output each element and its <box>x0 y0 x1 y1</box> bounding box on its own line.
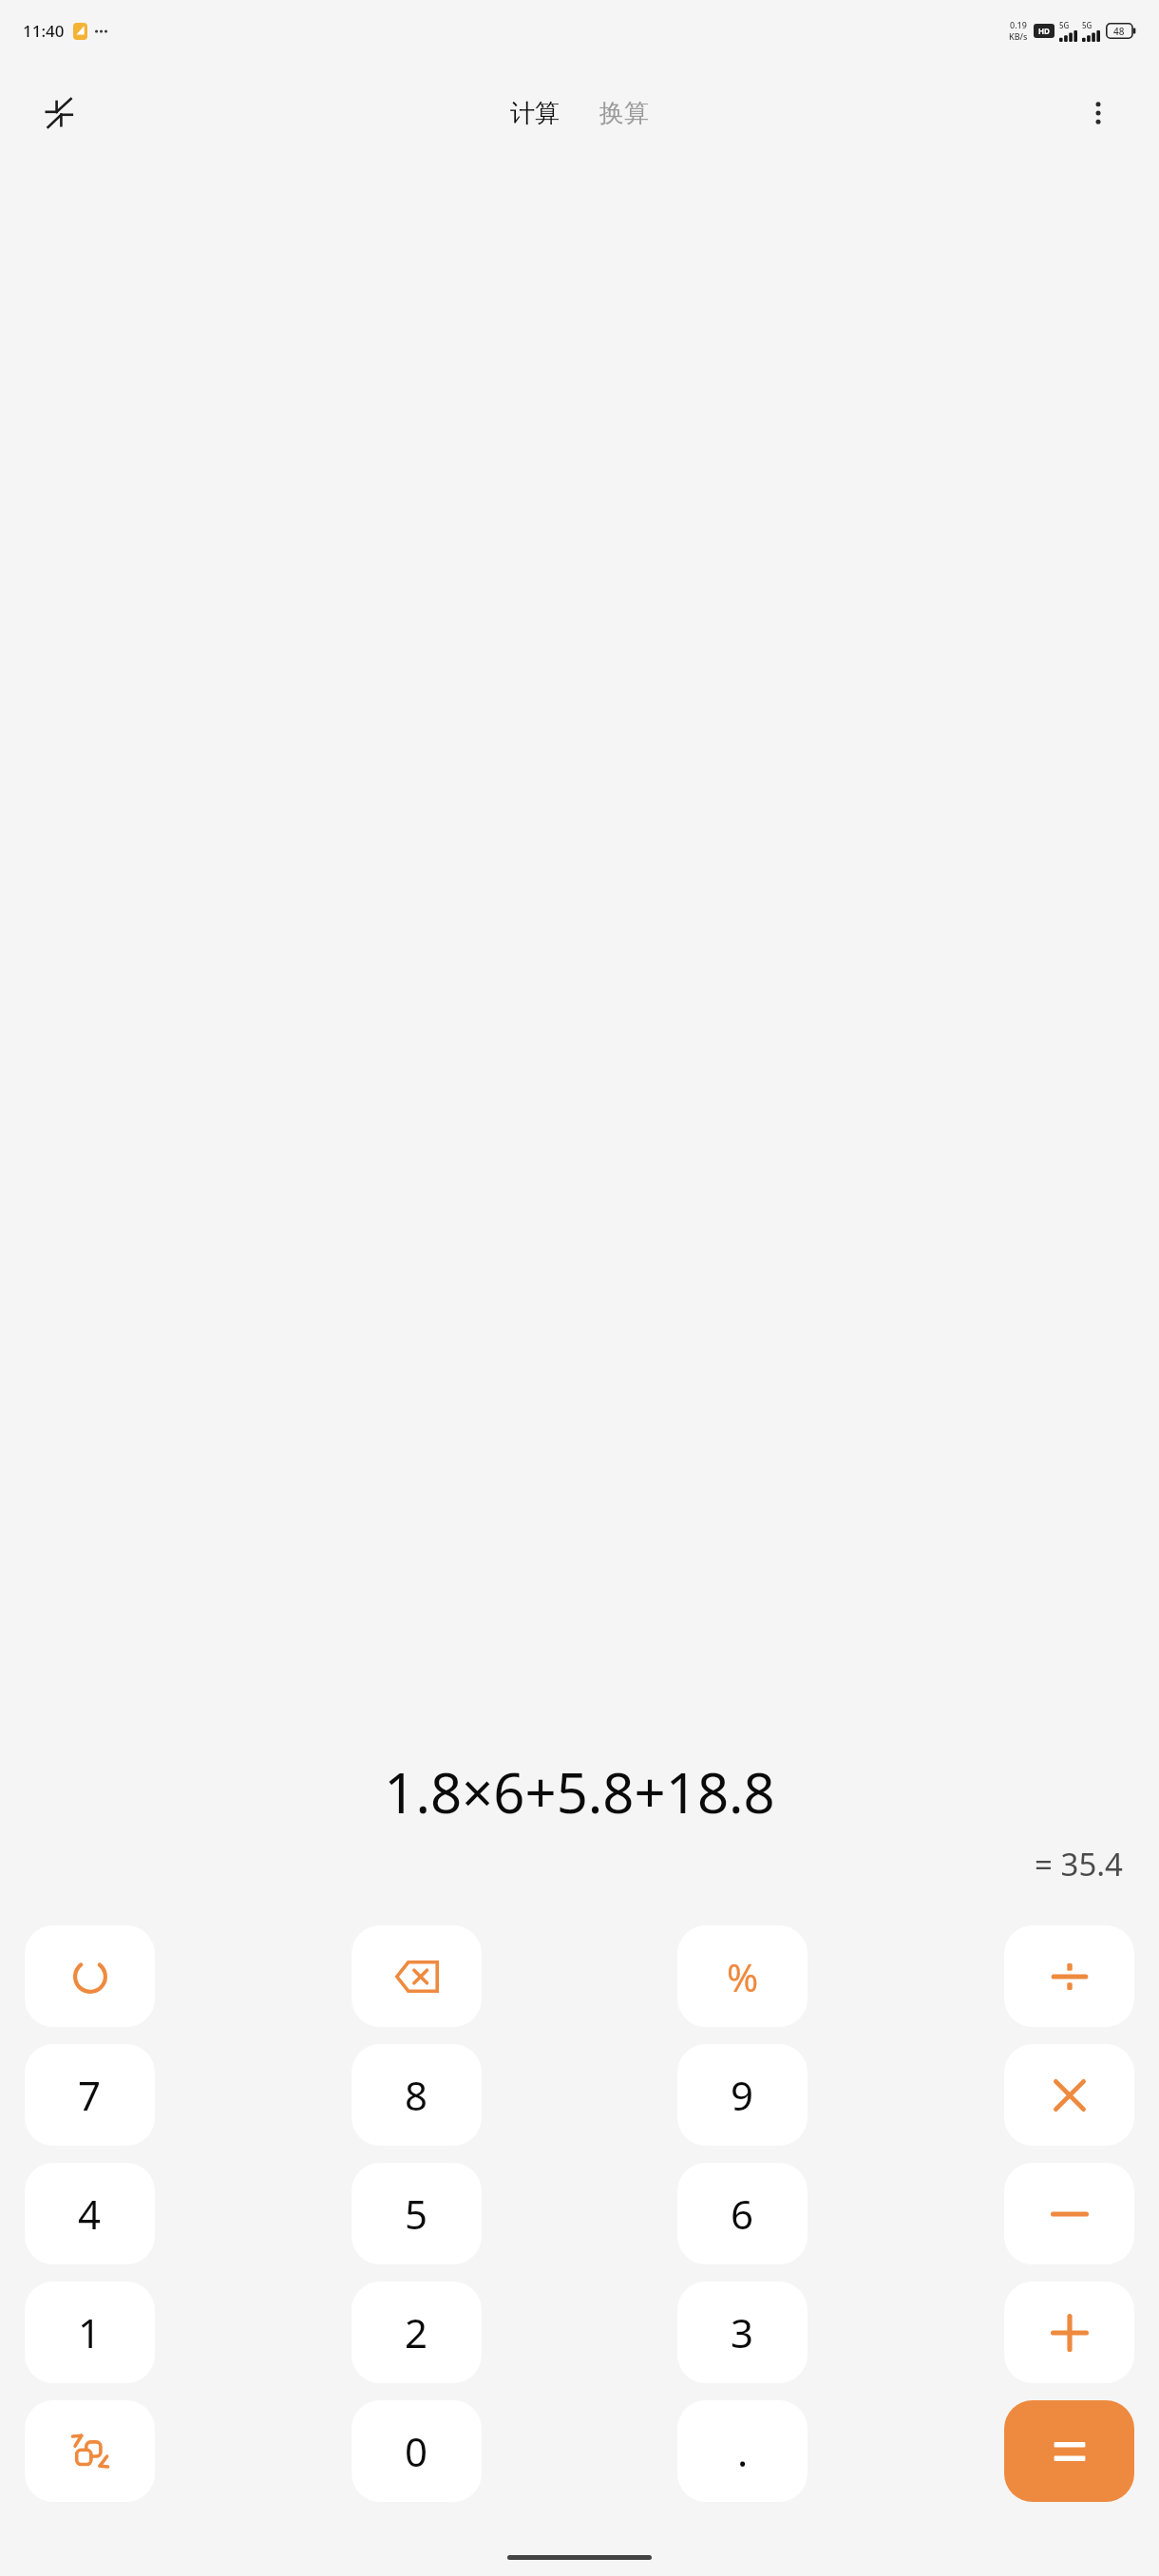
button[interactable]: Plus <box>1004 2282 1134 2383</box>
button[interactable]: Divide <box>1004 1925 1134 2027</box>
button[interactable]: Backspace <box>351 1925 482 2027</box>
button[interactable]: Scientific functions <box>25 2400 155 2502</box>
button[interactable]: 2 <box>351 2282 482 2383</box>
button[interactable]: 6 <box>677 2163 807 2264</box>
staticText: 1 <box>78 2305 102 2359</box>
button[interactable]: More options <box>1072 86 1125 140</box>
button[interactable]: . <box>677 2400 807 2502</box>
button[interactable]: 8 <box>351 2044 482 2146</box>
staticText: 5 <box>405 2187 428 2241</box>
button[interactable]: 5 <box>351 2163 482 2264</box>
button[interactable]: 4 <box>25 2163 155 2264</box>
staticText: 4 <box>78 2187 102 2241</box>
other: Clear <box>73 1960 107 1994</box>
staticText: 5G <box>1082 20 1092 30</box>
staticText: 6 <box>731 2187 754 2241</box>
staticText: 8 <box>405 2068 428 2122</box>
button[interactable]: Clear <box>25 1925 155 2027</box>
button[interactable]: Equals <box>1004 2400 1134 2502</box>
staticText: 0.19 <box>1010 19 1027 30</box>
staticText: 48 <box>1113 25 1125 38</box>
button[interactable]: % <box>677 1925 807 2027</box>
staticText: 9 <box>731 2068 754 2122</box>
staticText: 0 <box>405 2424 428 2478</box>
staticText: 7 <box>78 2068 102 2122</box>
staticText: = 35.4 <box>30 1843 1123 1885</box>
staticText: 2 <box>405 2305 428 2359</box>
other: Divide <box>1052 1959 1088 1995</box>
button[interactable]: 0 <box>351 2400 482 2502</box>
button[interactable]: Multiply <box>1004 2044 1134 2146</box>
staticText: 1.8×6+5.8+18.8 <box>30 1754 1129 1829</box>
other: Multiply <box>1054 2079 1086 2112</box>
button[interactable]: 1 <box>25 2282 155 2383</box>
staticText: 换算 <box>599 98 649 129</box>
button[interactable]: 换算 <box>590 90 658 137</box>
button[interactable]: 7 <box>25 2044 155 2146</box>
staticText: 3 <box>731 2305 754 2359</box>
staticText: . <box>737 2424 749 2478</box>
button[interactable]: 计算 <box>501 90 569 137</box>
button[interactable]: 3 <box>677 2282 807 2383</box>
staticText: KB/s <box>1009 30 1028 42</box>
staticText: 计算 <box>510 98 560 129</box>
other: Plus <box>1051 2314 1089 2352</box>
staticText: 11:40 <box>23 20 65 42</box>
other: Scientific functions <box>70 2432 110 2472</box>
other: Minus <box>1051 2209 1089 2219</box>
staticText: 5G <box>1059 20 1070 30</box>
button[interactable]: Collapse <box>32 86 85 140</box>
staticText: HD <box>1038 26 1050 36</box>
button[interactable]: 9 <box>677 2044 807 2146</box>
button[interactable]: Minus <box>1004 2163 1134 2264</box>
staticText: % <box>727 1951 759 2002</box>
other: Backspace <box>395 1960 439 1993</box>
